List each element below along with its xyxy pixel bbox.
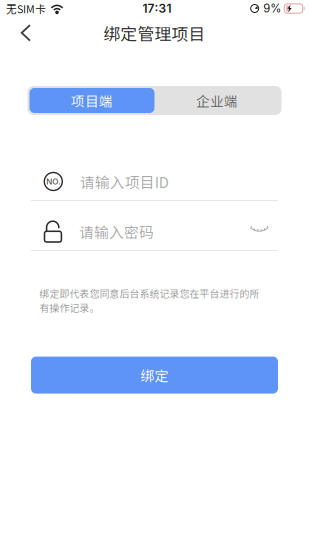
staticText: 企业端 xyxy=(196,91,238,110)
staticText: 无SIM卡 xyxy=(6,1,46,16)
button[interactable]: 项目端 xyxy=(29,88,154,113)
staticText: 项目端 xyxy=(71,91,113,110)
staticText: 绑定即代表您同意后台系统记录您在平台进行的所有操作记录。 xyxy=(39,286,259,315)
button[interactable]: 绑定 xyxy=(31,357,278,394)
staticText: 17:31 xyxy=(143,1,172,16)
staticText: 绑定管理项目 xyxy=(103,21,205,45)
staticText: 9% xyxy=(263,2,281,15)
staticText: NO. xyxy=(46,177,60,186)
button[interactable]: 返回 xyxy=(4,17,48,49)
button[interactable]: 显示密码 xyxy=(244,216,274,246)
button[interactable]: 企业端 xyxy=(154,88,279,113)
staticText: 请输入项目ID xyxy=(80,171,169,192)
staticText: 请输入密码 xyxy=(79,221,154,242)
staticText: 绑定 xyxy=(140,365,168,385)
